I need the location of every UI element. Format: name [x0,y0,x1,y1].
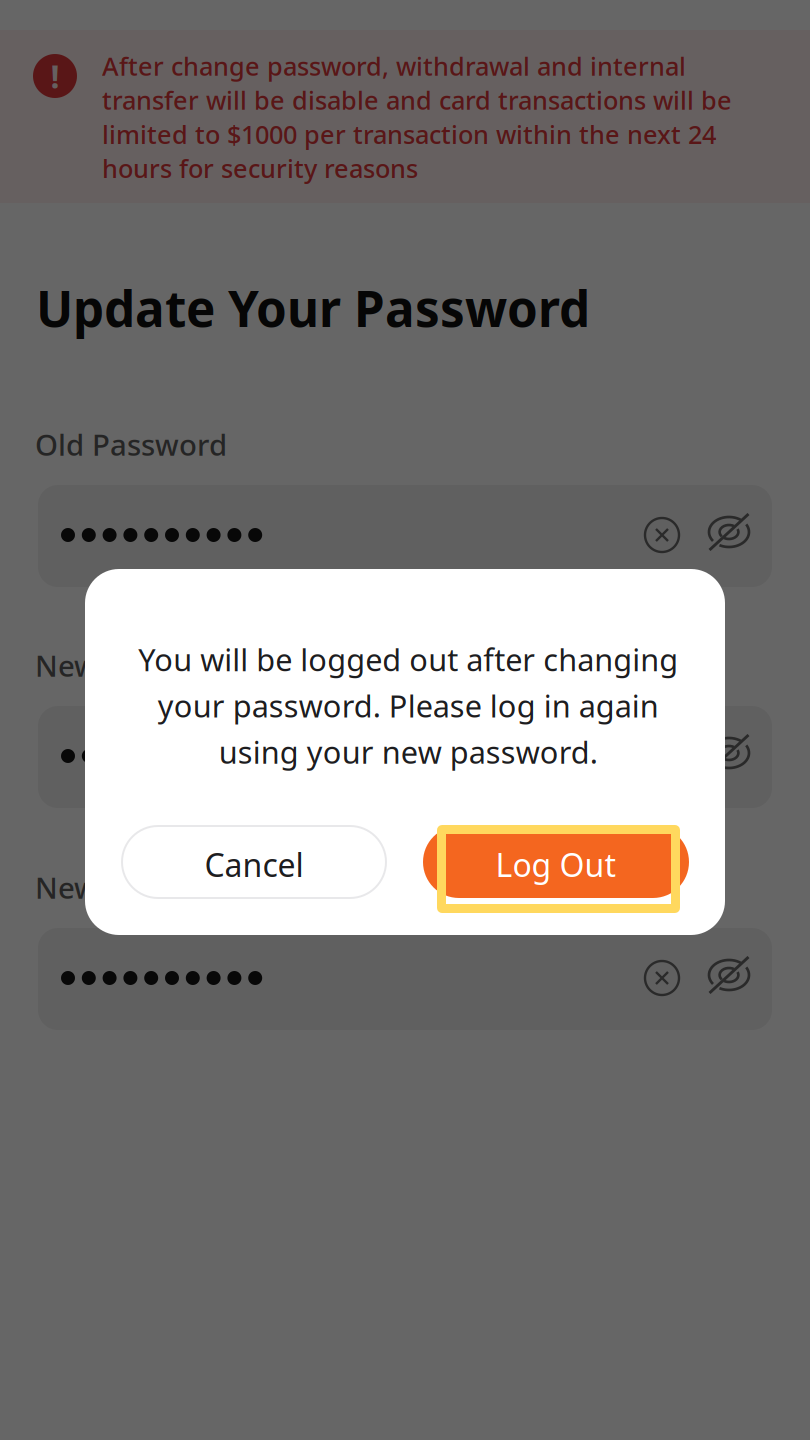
staticText: ! [50,55,59,97]
staticText: Cancel [204,843,303,886]
staticText: Update Your Password [36,275,590,340]
button[interactable]: Clear password [637,953,687,1003]
staticText: You will be logged out after changing yo… [138,639,678,772]
staticText: After change password, withdrawal and in… [102,49,732,185]
button[interactable]: Log Out [423,826,689,898]
button[interactable]: Clear password [637,510,687,560]
button[interactable]: Show password [698,946,760,1004]
button[interactable]: Cancel [122,826,386,898]
staticText: New Password Confirmation [35,868,434,907]
staticText: New Password [35,646,241,685]
staticText: Log Out [495,843,616,886]
button[interactable]: Show password [698,724,760,782]
staticText: Old Password [35,425,227,464]
button[interactable]: Show password [698,503,760,561]
